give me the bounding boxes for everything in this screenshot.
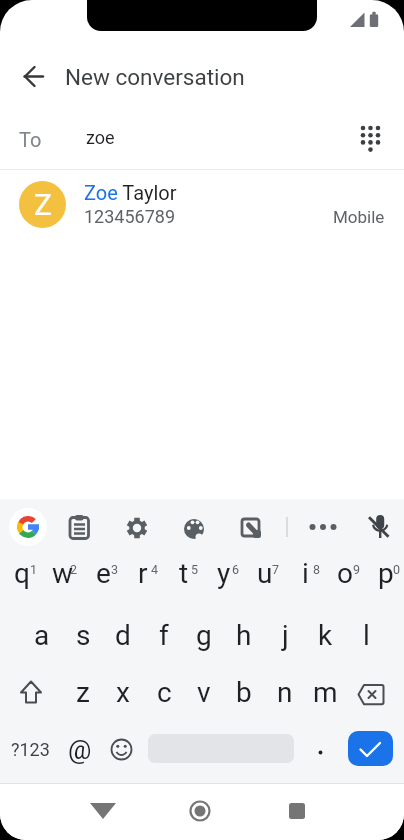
staticText: p — [378, 557, 394, 590]
staticText: k — [318, 619, 333, 652]
button[interactable] — [14, 57, 54, 97]
button[interactable]: b — [224, 665, 264, 719]
staticText: j — [282, 619, 289, 652]
button[interactable] — [6, 728, 50, 772]
button[interactable]: m — [305, 665, 345, 719]
button[interactable]: h — [224, 608, 264, 662]
staticText: 6 — [232, 562, 240, 576]
staticText: o — [337, 557, 353, 590]
staticText: 3 — [111, 562, 119, 576]
button[interactable] — [0, 172, 404, 238]
button[interactable] — [350, 672, 394, 716]
staticText: 9 — [353, 562, 361, 576]
button[interactable]: r — [123, 546, 163, 600]
button[interactable] — [351, 118, 391, 158]
staticText: q — [14, 557, 30, 590]
staticText: l — [363, 619, 370, 652]
staticText: x — [116, 676, 130, 709]
staticText: n — [277, 676, 293, 709]
button[interactable] — [100, 728, 143, 771]
staticText: 5 — [191, 562, 199, 576]
staticText: y — [217, 557, 231, 590]
button[interactable] — [117, 508, 157, 548]
staticText: u — [257, 557, 273, 590]
staticText: 7 — [272, 562, 280, 576]
button[interactable]: s — [63, 608, 103, 662]
button[interactable]: l — [346, 608, 386, 662]
staticText: 8 — [313, 562, 321, 576]
staticText: Mobile — [333, 207, 385, 227]
staticText: 123456789 — [84, 206, 176, 227]
staticText: @ — [68, 735, 92, 765]
button[interactable]: g — [184, 608, 224, 662]
button[interactable]: u — [245, 546, 285, 600]
button[interactable] — [8, 507, 48, 547]
button[interactable]: v — [184, 665, 224, 719]
button[interactable]: p — [366, 546, 404, 600]
button[interactable]: y — [204, 546, 244, 600]
staticText: New conversation — [65, 64, 245, 90]
staticText: zoe — [86, 127, 115, 148]
staticText: 1 — [30, 562, 38, 576]
button[interactable]: f — [144, 608, 184, 662]
staticText: ?123 — [11, 739, 50, 760]
button[interactable]: n — [265, 665, 305, 719]
staticText: 4 — [151, 562, 159, 576]
button[interactable] — [348, 731, 393, 766]
staticText: f — [159, 619, 169, 652]
button[interactable]: c — [144, 665, 184, 719]
button[interactable] — [0, 112, 404, 169]
button[interactable] — [8, 672, 52, 716]
button[interactable] — [59, 507, 99, 547]
staticText: Zoe Taylor — [84, 181, 177, 204]
staticText: b — [236, 676, 252, 709]
button[interactable]: o — [325, 546, 365, 600]
staticText: 0 — [393, 562, 401, 576]
staticText: s — [76, 619, 91, 652]
button[interactable]: d — [103, 608, 143, 662]
staticText: g — [196, 619, 212, 652]
staticText: Z — [34, 187, 52, 222]
button[interactable]: k — [305, 608, 345, 662]
staticText: r — [138, 557, 148, 590]
staticText: z — [76, 676, 90, 709]
button[interactable]: z — [63, 665, 103, 719]
staticText: w — [52, 557, 74, 590]
button[interactable]: j — [265, 608, 305, 662]
button[interactable] — [174, 509, 214, 549]
button[interactable]: x — [103, 665, 143, 719]
button[interactable]: e — [83, 546, 123, 600]
staticText: m — [313, 676, 338, 709]
button[interactable] — [277, 792, 317, 832]
staticText: e — [96, 557, 111, 590]
button[interactable]: a — [22, 608, 62, 662]
staticText: v — [197, 676, 211, 709]
staticText: c — [157, 676, 172, 709]
staticText: d — [115, 619, 131, 652]
button[interactable] — [83, 792, 123, 832]
button[interactable] — [300, 732, 338, 770]
button[interactable]: i — [285, 546, 325, 600]
staticText: 2 — [70, 562, 78, 576]
button[interactable]: t — [164, 546, 204, 600]
staticText: t — [179, 557, 189, 590]
button[interactable] — [360, 507, 400, 547]
button[interactable]: w — [43, 546, 83, 600]
button[interactable] — [235, 507, 275, 547]
button[interactable]: q — [2, 546, 42, 600]
staticText: a — [34, 619, 50, 652]
staticText: h — [236, 619, 252, 652]
staticText: To — [19, 128, 42, 151]
button[interactable]: @ — [60, 723, 100, 777]
button[interactable] — [180, 792, 220, 832]
button[interactable] — [303, 507, 343, 547]
staticText: i — [302, 557, 309, 590]
